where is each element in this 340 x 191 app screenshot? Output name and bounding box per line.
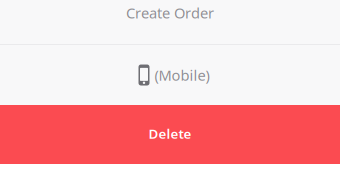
- button[interactable]: (Mobile): [0, 45, 340, 105]
- button[interactable]: Delete: [0, 105, 340, 164]
- staticText: Create Order: [126, 3, 214, 22]
- button[interactable]: Create Order: [0, 0, 340, 44]
- staticText: (Mobile): [154, 65, 209, 85]
- staticText: Delete: [148, 125, 191, 142]
